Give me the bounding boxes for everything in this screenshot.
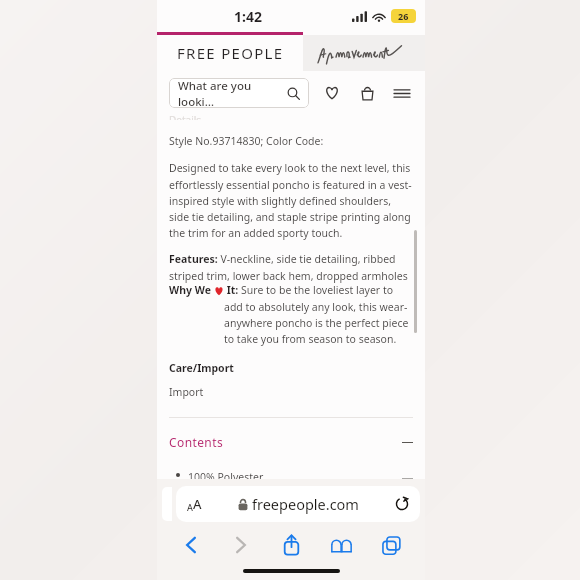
staticText: What are you looki… xyxy=(178,78,287,108)
button[interactable]: Bookmarks xyxy=(321,530,361,560)
staticText: 26 xyxy=(398,10,409,22)
button[interactable]: Forward xyxy=(221,530,261,560)
staticText: Care/Import xyxy=(169,361,234,375)
other: Collapse xyxy=(402,437,413,448)
button[interactable]: A xyxy=(176,486,420,522)
staticText: 1:42 xyxy=(234,7,262,26)
staticText: Contents xyxy=(169,434,402,450)
staticText: A xyxy=(193,495,202,513)
button[interactable]: Back xyxy=(171,530,211,560)
other: fp movement xyxy=(314,40,414,66)
button[interactable]: Tabs xyxy=(371,530,411,560)
staticText: Style No.93714830; Color Code: xyxy=(169,134,324,148)
staticText: Why We xyxy=(169,283,214,297)
button[interactable]: Contents xyxy=(169,434,413,450)
button[interactable]: Shopping bag xyxy=(356,82,378,104)
button[interactable]: What are you looki… xyxy=(169,78,309,108)
staticText: Designed to take every look to the next … xyxy=(169,161,413,240)
staticText: Features: V-neckline, side tie detailing… xyxy=(169,252,413,283)
staticText: Import xyxy=(169,385,204,399)
staticText: It: Sure to be the loveliest layer to ad… xyxy=(224,283,413,346)
staticText: Details xyxy=(169,113,202,120)
staticText: FREE PEOPLE xyxy=(177,43,284,63)
button[interactable]: Share xyxy=(271,530,311,560)
button[interactable]: Menu xyxy=(391,82,413,104)
button[interactable]: fp movement xyxy=(303,35,425,71)
button[interactable]: FREE PEOPLE xyxy=(157,35,303,71)
staticText: 100% Polyester xyxy=(188,470,264,479)
staticText: A xyxy=(187,501,193,513)
staticText: freepeople.com xyxy=(252,494,359,514)
button[interactable]: Favorites xyxy=(321,82,343,104)
